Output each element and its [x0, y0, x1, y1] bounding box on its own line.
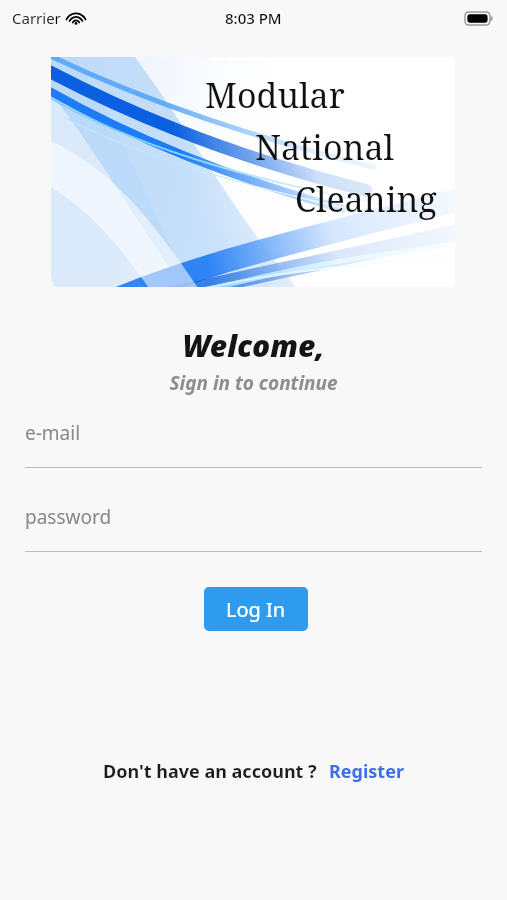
staticText: Register	[329, 759, 404, 784]
staticText: National	[255, 124, 395, 170]
staticText: Cleaning	[295, 176, 437, 222]
button[interactable]: Register	[329, 759, 404, 784]
button[interactable]: e-mail	[25, 420, 81, 446]
button[interactable]: Log In	[204, 587, 308, 631]
staticText: Welcome,	[0, 325, 507, 366]
staticText: Log In	[226, 596, 286, 623]
staticText: Sign in to continue	[0, 370, 507, 396]
staticText: Carrier	[12, 8, 61, 28]
button[interactable]: password	[25, 504, 112, 530]
staticText: Modular	[205, 72, 345, 118]
staticText: 8:03 PM	[225, 8, 282, 28]
staticText: Don't have an account ?	[103, 759, 317, 784]
